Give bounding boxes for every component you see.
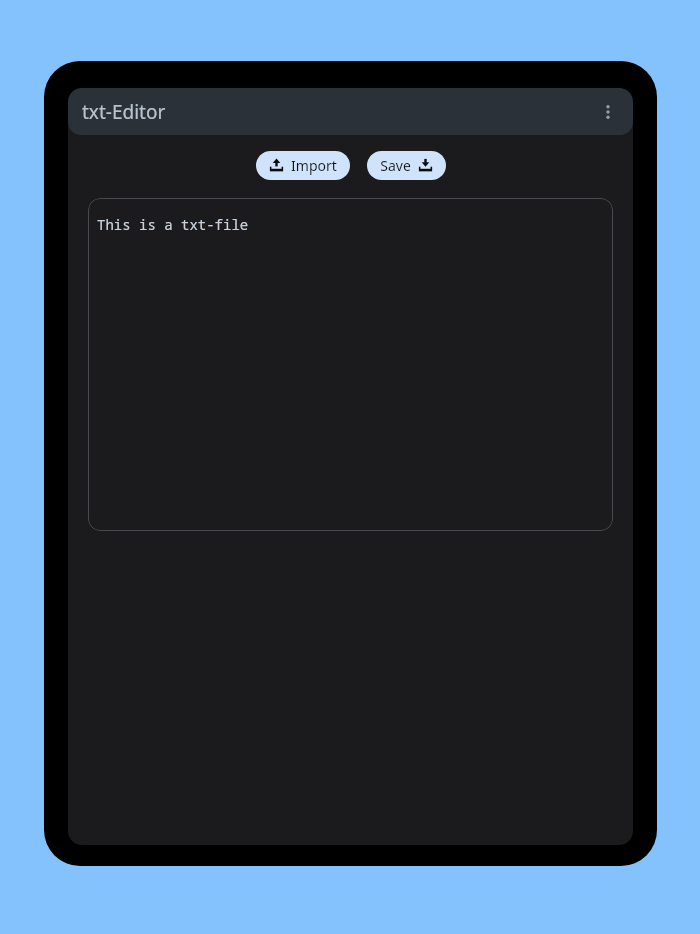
button[interactable]: Import xyxy=(256,151,350,180)
staticText: txt-Editor xyxy=(82,99,166,125)
staticText: Import xyxy=(291,156,337,175)
button[interactable]: Save xyxy=(367,151,446,180)
staticText: Save xyxy=(380,156,411,175)
button[interactable]: This is a txt-file xyxy=(88,198,613,531)
button[interactable]: More options xyxy=(591,95,625,129)
staticText: This is a txt-file xyxy=(97,215,249,234)
